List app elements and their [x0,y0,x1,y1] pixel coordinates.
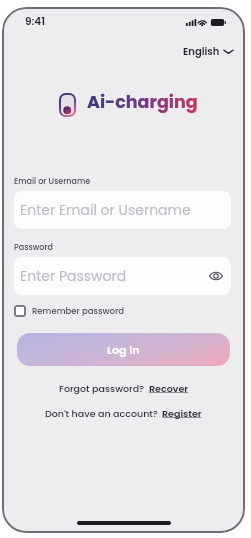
button[interactable]: Log in [17,333,230,366]
button[interactable]: Register [162,407,202,420]
staticText: Email or Username [14,176,91,187]
staticText: English [183,44,220,58]
button[interactable]: Recover [149,382,189,395]
button[interactable]: Show password [207,267,225,285]
staticText: Password [14,242,53,253]
staticText: Enter Password [20,266,127,286]
staticText: 9:41 [25,14,46,29]
staticText: Remember password [32,305,125,317]
button[interactable]: Enter Email or Username [14,191,231,229]
staticText: Don't have an account? [45,407,158,420]
staticText: Ai-charging [87,90,198,115]
button[interactable]: Remember password [12,303,127,319]
staticText: Recover [149,382,189,395]
button[interactable]: English [179,41,237,61]
staticText: Log in [107,342,140,357]
staticText: Enter Email or Username [20,200,191,220]
staticText: Register [162,407,202,420]
staticText: Forgot password? [59,382,145,395]
button[interactable]: Enter Password [14,257,231,295]
